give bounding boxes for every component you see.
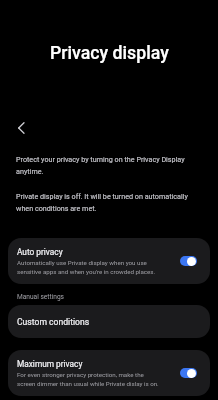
button[interactable]: Custom conditions — [8, 305, 210, 338]
button[interactable]: Toggle — [180, 256, 197, 266]
staticText: Auto privacy — [17, 247, 63, 257]
button[interactable]: Toggle — [180, 368, 197, 378]
staticText: Private display is off. It will be turne… — [16, 192, 188, 213]
staticText: Automatically use Private display when y… — [17, 259, 156, 275]
staticText: For even stronger privacy protection, ma… — [17, 371, 159, 387]
button[interactable]: Maximum privacy — [8, 350, 210, 396]
button[interactable]: Auto privacy — [8, 238, 210, 284]
staticText: Protect your privacy by turning on the P… — [16, 155, 185, 176]
button[interactable]: Back — [6, 113, 36, 143]
staticText: Maximum privacy — [17, 359, 83, 369]
staticText: Privacy display — [50, 43, 169, 64]
staticText: Custom conditions — [17, 317, 90, 327]
staticText: Manual settings — [17, 293, 65, 301]
